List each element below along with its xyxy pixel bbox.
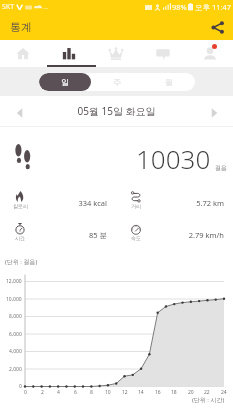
button[interactable]: 주 bbox=[91, 73, 143, 91]
staticText: 05월 15일 화요일 bbox=[38, 104, 195, 118]
staticText: 10,000 bbox=[6, 296, 22, 303]
staticText: 거리 bbox=[131, 203, 141, 209]
button[interactable]: Profile bbox=[186, 40, 233, 67]
staticText: SKT bbox=[2, 2, 15, 12]
staticText: (단위 : 시간) bbox=[192, 396, 225, 404]
staticText: ... bbox=[43, 3, 48, 11]
button[interactable]: Next day bbox=[195, 96, 233, 126]
staticText: 주 bbox=[113, 77, 121, 87]
staticText: 2.79 km/h bbox=[188, 230, 224, 240]
button[interactable]: 칼로리 bbox=[0, 182, 116, 214]
staticText: 0 bbox=[19, 383, 22, 390]
staticText: 2,000 bbox=[9, 366, 22, 373]
staticText: 10030 bbox=[136, 141, 211, 176]
button[interactable]: Previous day bbox=[0, 96, 38, 126]
button[interactable]: Messages bbox=[139, 40, 186, 67]
staticText: 22 bbox=[204, 389, 210, 396]
staticText: 시간 bbox=[15, 235, 25, 241]
staticText: 10 bbox=[105, 389, 111, 396]
staticText: 18 bbox=[171, 389, 177, 396]
staticText: 칼로리 bbox=[13, 203, 28, 209]
staticText: 6,000 bbox=[9, 331, 22, 338]
button[interactable]: 일 bbox=[39, 73, 91, 91]
button[interactable]: 속도 bbox=[116, 214, 233, 247]
staticText: 334 kcal bbox=[78, 198, 107, 208]
button[interactable]: Statistics bbox=[46, 40, 92, 67]
button[interactable]: 시간 bbox=[0, 214, 116, 247]
button[interactable]: 월 bbox=[143, 73, 195, 91]
staticText: 0 bbox=[24, 389, 27, 396]
staticText: 걸음 bbox=[215, 164, 227, 172]
staticText: 16 bbox=[155, 389, 161, 396]
button[interactable]: Share bbox=[206, 16, 228, 38]
staticText: 6 bbox=[74, 389, 77, 396]
staticText: 4 bbox=[57, 389, 60, 396]
staticText: 24 bbox=[221, 389, 227, 396]
staticText: 2 bbox=[41, 389, 44, 396]
staticText: 14 bbox=[138, 389, 144, 396]
button[interactable]: 거리 bbox=[116, 182, 233, 214]
staticText: 8,000 bbox=[9, 313, 22, 320]
staticText: 속도 bbox=[131, 235, 141, 241]
staticText: 월 bbox=[165, 77, 173, 87]
staticText: 일 bbox=[61, 77, 69, 87]
staticText: 20 bbox=[188, 389, 194, 396]
staticText: 오후 11:47 bbox=[195, 2, 232, 12]
staticText: 4,000 bbox=[9, 348, 22, 355]
staticText: 12 bbox=[122, 389, 128, 396]
staticText: (단위 : 걸음) bbox=[5, 258, 38, 266]
staticText: 98% bbox=[172, 2, 187, 12]
button[interactable]: Ranking bbox=[92, 40, 139, 67]
staticText: 8 bbox=[90, 389, 93, 396]
staticText: 5.72 km bbox=[196, 198, 224, 208]
button[interactable]: Home bbox=[0, 40, 46, 67]
staticText: 통계 bbox=[10, 20, 32, 34]
staticText: 85 분 bbox=[88, 230, 107, 240]
staticText: 12,000 bbox=[6, 278, 22, 285]
